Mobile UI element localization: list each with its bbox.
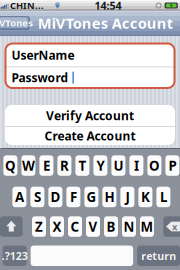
staticText: C xyxy=(70,217,79,236)
staticText: H xyxy=(104,188,114,206)
button[interactable]: return xyxy=(137,245,180,266)
button[interactable]: O xyxy=(147,155,161,176)
staticText: O xyxy=(149,156,160,175)
button[interactable]: G xyxy=(84,187,98,207)
staticText: Password xyxy=(11,69,68,86)
staticText: S xyxy=(34,188,41,206)
staticText: .?123 xyxy=(2,248,28,263)
button[interactable]: T xyxy=(75,155,89,176)
button[interactable]: R xyxy=(57,155,71,176)
button[interactable] xyxy=(31,245,133,266)
staticText: Q xyxy=(5,156,16,175)
button[interactable]: P xyxy=(165,155,179,176)
button[interactable]: L xyxy=(156,187,170,207)
button[interactable]: S xyxy=(30,187,44,207)
button[interactable]: Q xyxy=(3,155,17,176)
button[interactable]: N xyxy=(122,216,136,237)
staticText: A xyxy=(15,188,24,206)
staticText: X xyxy=(52,217,61,236)
staticText: M xyxy=(140,217,153,236)
staticText: Z xyxy=(35,217,43,236)
button[interactable]: W xyxy=(21,155,35,176)
staticText: F xyxy=(70,188,77,206)
staticText: K xyxy=(141,188,150,206)
button[interactable]: F xyxy=(66,187,80,207)
button[interactable]: Z xyxy=(32,216,46,237)
button[interactable]: U xyxy=(111,155,125,176)
button[interactable]: D xyxy=(48,187,62,207)
button[interactable]: H xyxy=(102,187,116,207)
staticText: Create Account xyxy=(44,128,135,144)
button[interactable]: Verify Account xyxy=(5,105,175,126)
button[interactable]: E xyxy=(39,155,53,176)
button[interactable]: Shift xyxy=(0,216,23,237)
staticText: B xyxy=(106,217,115,236)
button[interactable]: V xyxy=(86,216,100,237)
staticText: CHIN... xyxy=(10,0,44,12)
staticText: L xyxy=(160,188,167,206)
staticText: U xyxy=(113,156,123,175)
button[interactable]: X xyxy=(50,216,64,237)
button[interactable]: K xyxy=(138,187,152,207)
button[interactable]: Delete xyxy=(163,216,180,237)
staticText: 14:54 xyxy=(95,0,122,13)
staticText: N xyxy=(123,217,134,236)
button[interactable]: I xyxy=(129,155,143,176)
staticText: MiVTones Account xyxy=(38,13,173,33)
staticText: T xyxy=(78,156,86,175)
button[interactable]: B xyxy=(104,216,118,237)
staticText: MiVTones xyxy=(0,17,33,29)
staticText: x xyxy=(172,220,177,233)
staticText: UserName xyxy=(11,47,74,63)
staticText: W xyxy=(22,156,35,175)
staticText: I xyxy=(134,156,139,175)
button[interactable]: C xyxy=(68,216,82,237)
staticText: Y xyxy=(96,156,104,175)
button[interactable]: Y xyxy=(93,155,107,176)
staticText: D xyxy=(50,188,60,206)
button[interactable]: J xyxy=(120,187,134,207)
staticText: return xyxy=(141,248,176,263)
button[interactable]: MiVTones xyxy=(0,16,30,30)
staticText: G xyxy=(86,188,96,206)
staticText: Verify Account xyxy=(46,107,134,124)
staticText: P xyxy=(168,156,176,175)
button[interactable]: .?123 xyxy=(3,245,27,266)
button[interactable]: M xyxy=(140,216,154,237)
staticText: J xyxy=(125,188,129,206)
staticText: E xyxy=(43,156,50,175)
staticText: R xyxy=(60,156,69,175)
button[interactable]: A xyxy=(12,187,26,207)
button[interactable]: Create Account xyxy=(5,127,175,145)
staticText: V xyxy=(88,217,97,236)
